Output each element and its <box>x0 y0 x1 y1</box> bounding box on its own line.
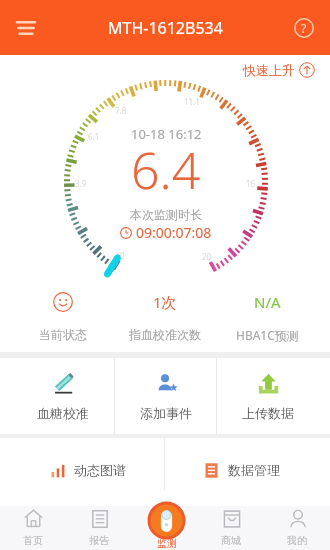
staticText: 6.1 <box>88 131 100 141</box>
staticText: MTH-1612B534 <box>108 17 223 39</box>
staticText: 数据管理 <box>228 462 280 478</box>
staticText: 11.1 <box>184 96 200 106</box>
button[interactable]: 当前状态 <box>12 291 114 342</box>
staticText: 动态图谱 <box>74 462 126 478</box>
staticText: 指血校准次数 <box>129 327 201 342</box>
button[interactable]: 上传数据 <box>217 358 318 434</box>
staticText: 监测 <box>157 537 177 550</box>
staticText: N/A <box>254 292 281 312</box>
staticText: 0 <box>120 250 125 260</box>
button[interactable]: 报告 <box>66 506 132 550</box>
staticText: HBA1C预测 <box>236 327 299 343</box>
staticText: 6.4 <box>131 136 201 204</box>
staticText: 快速上升 <box>243 62 295 78</box>
staticText: 血糖校准 <box>37 405 89 421</box>
staticText: 本次监测时长 <box>130 207 202 222</box>
staticText: 3.9 <box>75 178 87 188</box>
staticText: 报告 <box>89 534 109 547</box>
staticText: 1次 <box>153 292 177 312</box>
button[interactable]: N/A <box>216 291 318 343</box>
button[interactable]: Menu <box>8 10 44 46</box>
staticText: 首页 <box>23 534 43 547</box>
button[interactable]: 商城 <box>198 506 264 550</box>
button[interactable]: 血糖校准 <box>12 358 114 434</box>
button[interactable]: 数据管理 <box>165 438 318 502</box>
button[interactable]: 添加事件 <box>115 358 216 434</box>
staticText: 09:00:07:08 <box>136 223 212 242</box>
staticText: 商城 <box>221 534 241 547</box>
staticText: 16 <box>246 178 256 188</box>
staticText: ? <box>301 20 307 36</box>
button[interactable]: 快速上升 <box>243 62 315 78</box>
button[interactable]: 我的 <box>264 506 330 550</box>
staticText: 20 <box>202 251 212 261</box>
button[interactable]: Help <box>286 10 322 46</box>
button[interactable]: 1次 <box>114 291 216 342</box>
button[interactable]: 监测 <box>144 499 188 543</box>
staticText: 我的 <box>287 534 307 547</box>
staticText: 添加事件 <box>140 405 192 421</box>
button[interactable]: 动态图谱 <box>12 438 164 502</box>
staticText: 7.8 <box>115 105 127 115</box>
staticText: 10-18 16:12 <box>131 125 202 143</box>
staticText: 上传数据 <box>242 405 294 421</box>
button[interactable]: 首页 <box>0 506 66 550</box>
staticText: 当前状态 <box>39 327 87 342</box>
